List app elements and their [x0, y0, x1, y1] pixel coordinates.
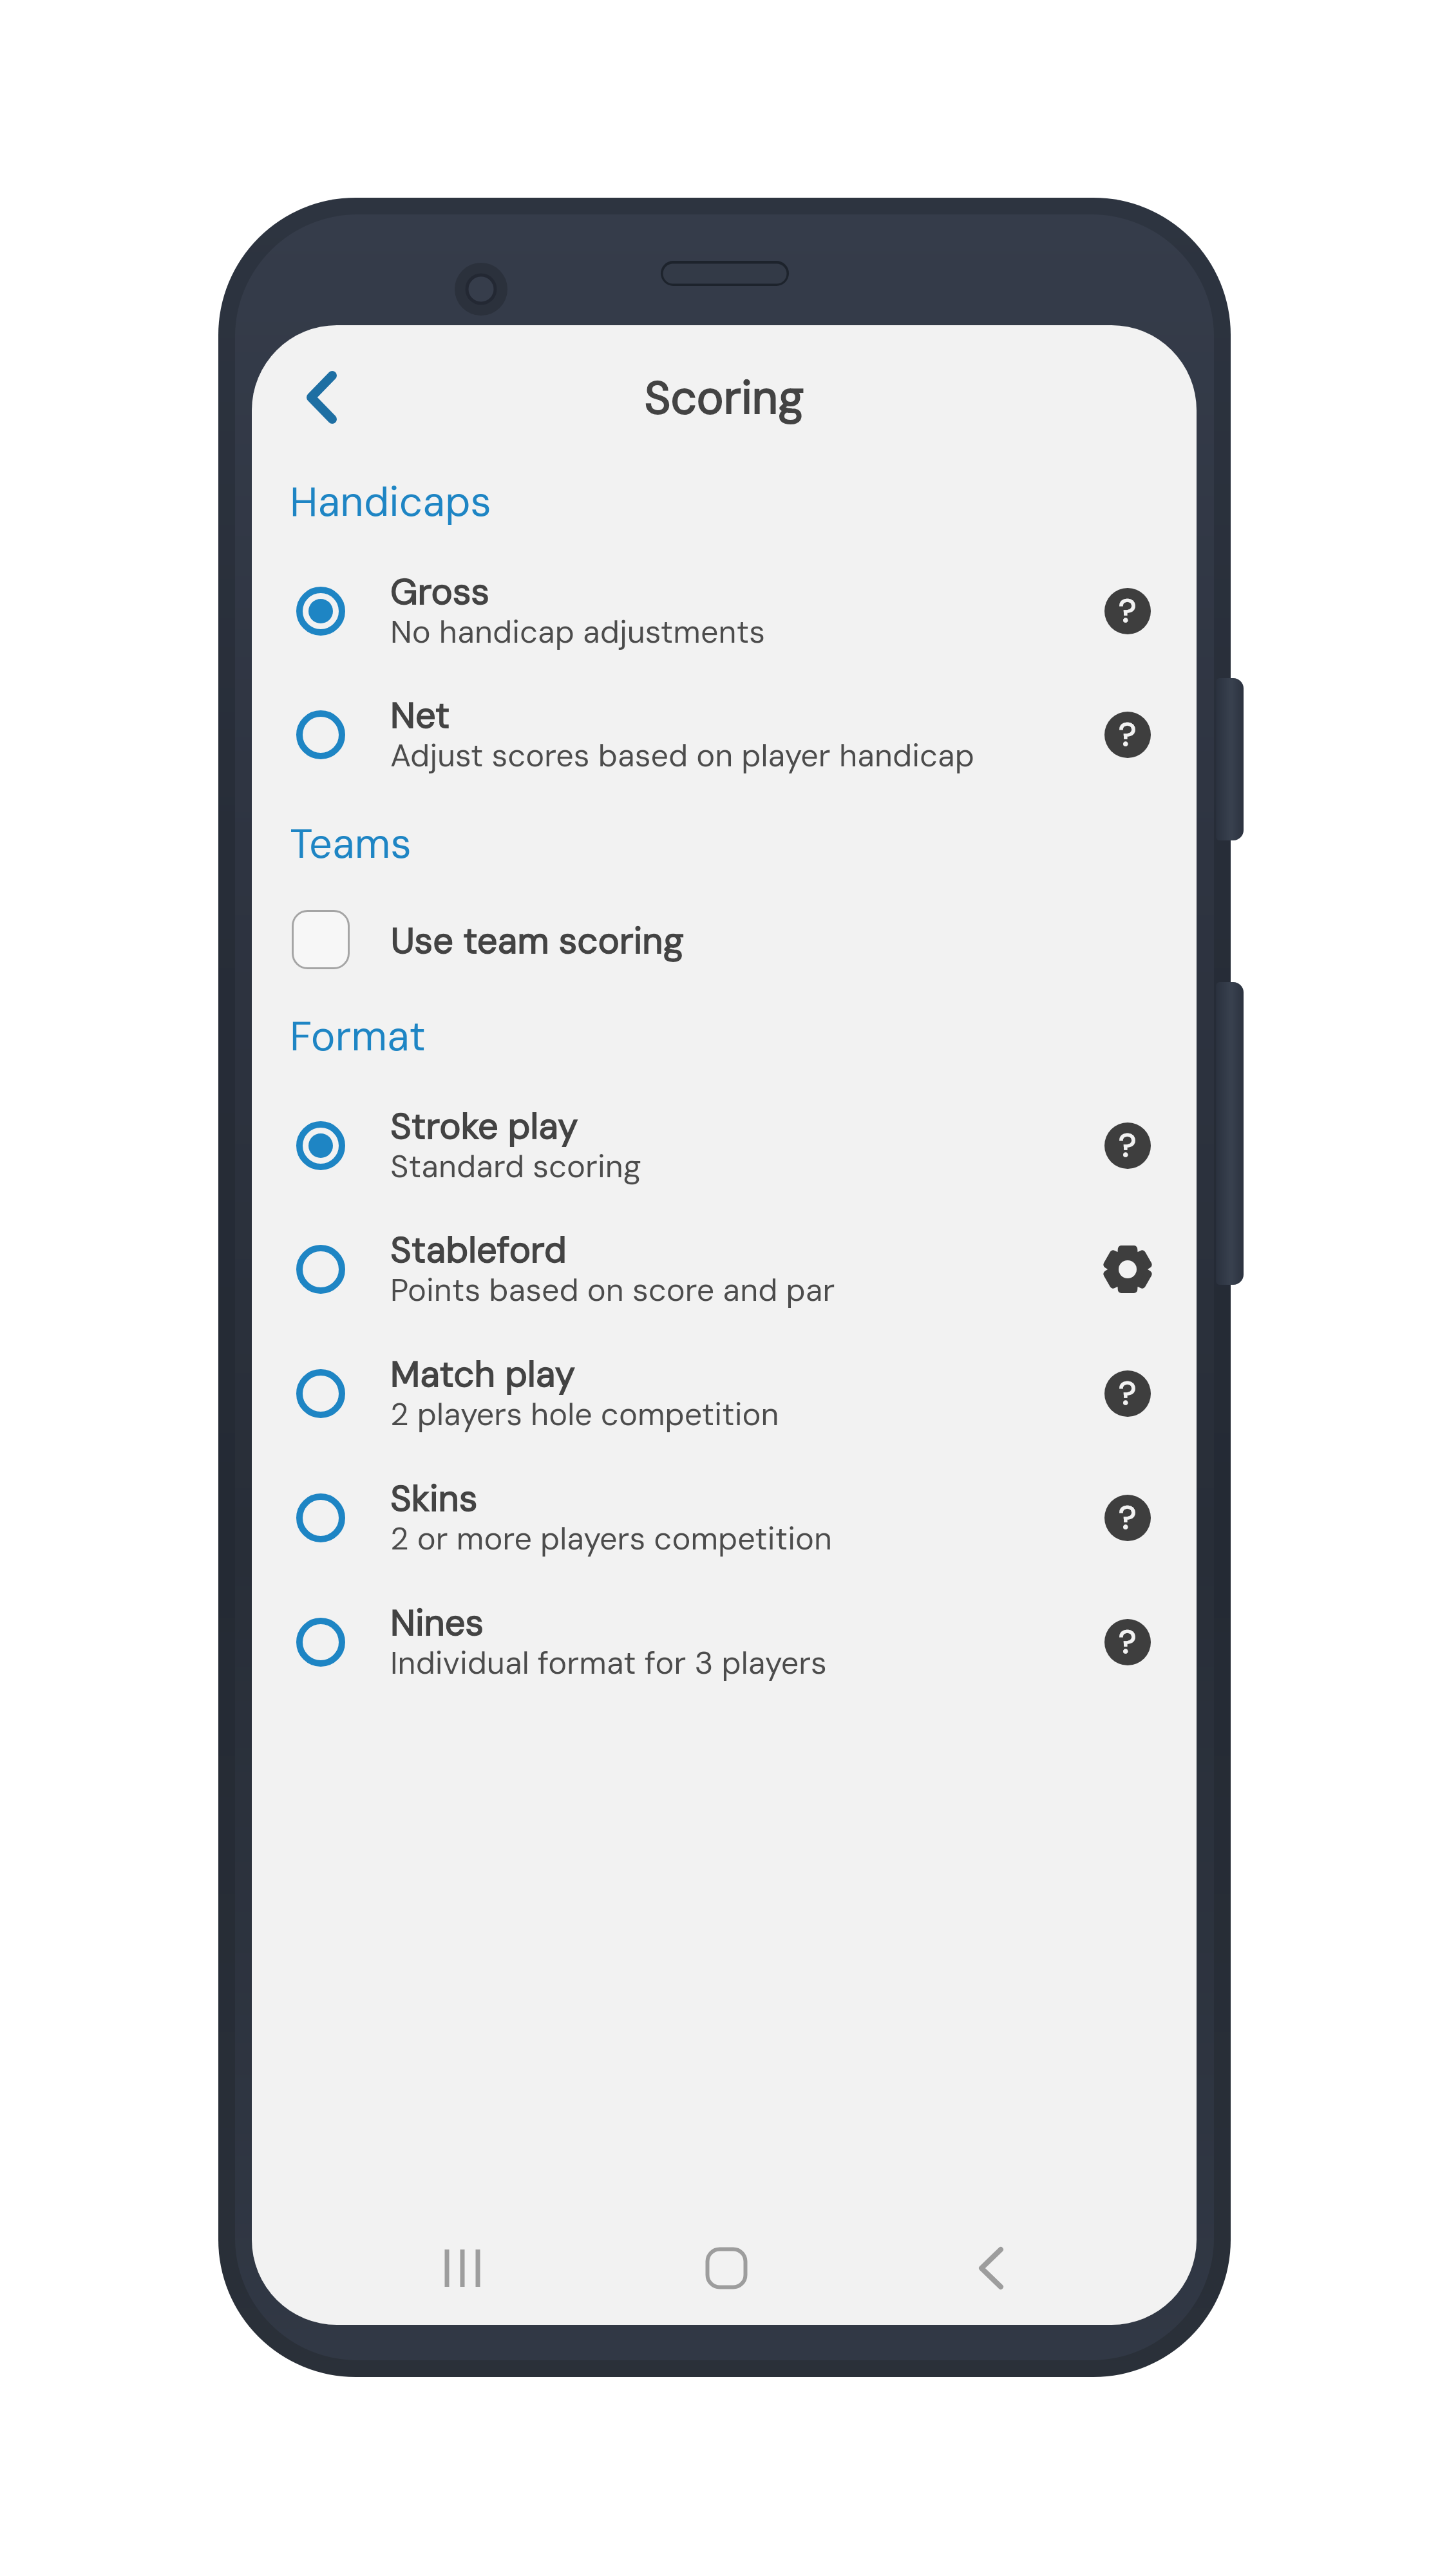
- staticText: ?: [1119, 1621, 1137, 1663]
- button[interactable]: Help: [1086, 1352, 1170, 1435]
- button[interactable]: Use team scoring: [267, 878, 1181, 1001]
- staticText: Stableford: [390, 1226, 567, 1273]
- staticText: Standard scoring: [390, 1146, 641, 1187]
- button[interactable]: Home: [656, 2204, 797, 2325]
- staticText: No handicap adjustments: [390, 612, 766, 652]
- button[interactable]: Help: [1086, 1104, 1170, 1188]
- button[interactable]: Recent apps: [392, 2204, 533, 2325]
- staticText: 2 or more players competition: [390, 1519, 832, 1559]
- button[interactable]: Settings: [1086, 1227, 1170, 1311]
- staticText: Teams: [290, 817, 412, 871]
- button[interactable]: Gross: [267, 550, 1181, 672]
- staticText: Scoring: [252, 369, 1197, 428]
- button[interactable]: Help: [1086, 1476, 1170, 1560]
- staticText: Match play: [390, 1350, 575, 1397]
- button[interactable]: Back: [279, 355, 363, 439]
- staticText: ?: [1119, 1124, 1137, 1166]
- staticText: Format: [290, 1010, 426, 1063]
- staticText: Gross: [390, 568, 489, 615]
- staticText: Nines: [390, 1599, 484, 1646]
- staticText: ?: [1119, 1497, 1137, 1539]
- staticText: Points based on score and par: [390, 1270, 835, 1311]
- staticText: ?: [1119, 714, 1137, 755]
- staticText: Stroke play: [390, 1103, 578, 1150]
- button[interactable]: Stableford: [267, 1208, 1181, 1331]
- button[interactable]: Nines: [267, 1581, 1181, 1703]
- button[interactable]: Stroke play: [267, 1084, 1181, 1207]
- staticText: Skins: [390, 1475, 478, 1522]
- staticText: Adjust scores based on player handicap: [390, 735, 974, 776]
- staticText: Use team scoring: [391, 917, 684, 964]
- button[interactable]: Back: [920, 2204, 1062, 2325]
- staticText: ?: [1119, 1372, 1137, 1414]
- button[interactable]: Match play: [267, 1332, 1181, 1455]
- button[interactable]: Help: [1086, 693, 1170, 777]
- staticText: ?: [1119, 590, 1137, 632]
- button[interactable]: Skins: [267, 1457, 1181, 1579]
- button[interactable]: Help: [1086, 569, 1170, 653]
- staticText: Individual format for 3 players: [390, 1643, 827, 1683]
- staticText: Net: [390, 692, 450, 739]
- staticText: Handicaps: [290, 475, 491, 529]
- staticText: 2 players hole competition: [390, 1394, 779, 1435]
- button[interactable]: Net: [267, 674, 1181, 796]
- button[interactable]: Help: [1086, 1600, 1170, 1684]
